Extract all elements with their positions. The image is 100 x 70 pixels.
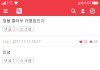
- staticText: 1: [13, 58, 15, 63]
- staticText: 38: [93, 39, 97, 44]
- staticText: 정품 콜라보 가맹점인가: [2, 18, 44, 23]
- staticText: N: [17, 8, 21, 14]
- staticText: 익명 | 2017.11.13 18:07: [2, 39, 40, 44]
- button[interactable]: 스크랩: [18, 26, 33, 31]
- staticText: 안녕: [2, 50, 10, 55]
- button[interactable]: Compose: [88, 6, 97, 16]
- staticText: 12: [83, 39, 87, 44]
- button[interactable]: Profile: [78, 6, 88, 16]
- button[interactable]: 댓글: [2, 26, 16, 31]
- staticText: LTE: [7, 1, 13, 5]
- staticText: 스크랩: [20, 58, 32, 63]
- staticText: 댓글: [4, 58, 12, 63]
- button[interactable]: 댓글: [2, 58, 16, 63]
- button[interactable]: Home: [16, 6, 22, 16]
- button[interactable]: Menu: [2, 6, 9, 16]
- staticText: 3: [13, 27, 15, 31]
- staticText: 오후 6:07: [77, 1, 91, 5]
- button[interactable]: Search: [69, 6, 78, 16]
- staticText: 댓글: [4, 27, 12, 31]
- staticText: 스크랩: [20, 27, 32, 31]
- button[interactable]: 스크랩: [18, 58, 33, 63]
